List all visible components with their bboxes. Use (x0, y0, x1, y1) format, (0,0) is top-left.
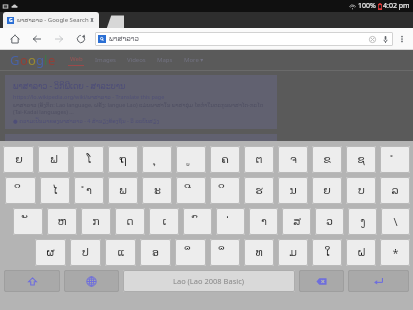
staticText: ໂ (86, 153, 92, 166)
staticText: Web (70, 55, 83, 63)
staticText: ຍ (323, 184, 331, 197)
button[interactable]: ງ (348, 208, 377, 235)
button[interactable]: ລ (380, 177, 410, 204)
button[interactable]: ຟ (38, 146, 69, 173)
button[interactable]: ູ (176, 146, 206, 173)
button[interactable]: ະ (142, 177, 172, 204)
button[interactable]: Maps (157, 56, 173, 64)
button[interactable]: ຮ (244, 177, 274, 204)
staticText: ພາສາລາວ (ອັງກິດ: Lao language, ຝຣັ່ງ: la… (13, 101, 269, 115)
button[interactable]: ດ (115, 208, 145, 235)
button[interactable]: ຫ (47, 208, 77, 235)
button[interactable]: າ (249, 208, 278, 235)
button[interactable]: ຄ (210, 146, 240, 173)
button[interactable]: ສ (282, 208, 311, 235)
staticText: e (48, 51, 56, 69)
staticText: 100% (358, 1, 376, 11)
staticText: \ (393, 214, 398, 229)
button[interactable]: ຝ (346, 239, 376, 266)
button[interactable]: ມ (278, 239, 308, 266)
staticText: Lao (Lao 2008 Basic) (173, 276, 245, 286)
button[interactable]: ຖ (108, 146, 138, 173)
button[interactable]: Lao (Lao 2008 Basic) (123, 270, 295, 292)
button[interactable]: Back (26, 28, 48, 49)
button[interactable]: ັ (13, 208, 43, 235)
button[interactable]: Clear (368, 35, 377, 44)
button[interactable]: ຈ (278, 146, 308, 173)
button[interactable]: \ (381, 208, 410, 235)
button[interactable]: ົ (183, 208, 212, 235)
staticText: ວ (326, 215, 333, 228)
staticText: ຟ (50, 153, 58, 166)
button[interactable]: More ▾ (184, 56, 204, 64)
button[interactable]: ຸ (142, 146, 172, 173)
button[interactable]: Images (95, 56, 116, 64)
staticText: * (392, 245, 399, 260)
button[interactable]: ນ (278, 177, 308, 204)
button[interactable]: Other tab (102, 12, 124, 28)
staticText: ມ (289, 246, 297, 259)
staticText: o (28, 51, 36, 69)
button[interactable]: ີ (176, 177, 206, 204)
button[interactable]: ວ (315, 208, 344, 235)
staticText: ງ (360, 215, 366, 228)
button[interactable]: Reload (70, 28, 92, 49)
button[interactable]: ໂ (73, 146, 104, 173)
button[interactable]: Close tab (89, 16, 95, 24)
button[interactable]: Forward (48, 28, 70, 49)
button[interactable]: Change language (64, 270, 119, 292)
button[interactable]: ເ (149, 208, 179, 235)
button[interactable]: ຳ (74, 177, 104, 204)
staticText: ຫ (57, 215, 67, 228)
button[interactable]: More options (395, 32, 409, 46)
button[interactable]: ່ (216, 208, 245, 235)
button[interactable]: Web (68, 55, 84, 66)
button[interactable]: ຍ (3, 146, 34, 173)
button[interactable]: ທ (244, 239, 274, 266)
staticText: ຝ (357, 246, 366, 259)
button[interactable]: ຂ (312, 146, 342, 173)
button[interactable]: ພາສາລາວ - ວິກິພີເດຍ - ສາລະບານ (5, 75, 277, 129)
button[interactable]: Home (4, 28, 26, 49)
staticText: ຍ (15, 153, 23, 166)
button[interactable]: ພ (108, 177, 138, 204)
staticText: ຜ (46, 246, 55, 259)
button[interactable]: ບ (346, 177, 376, 204)
button[interactable]: Videos (127, 56, 146, 64)
staticText: ຳ (86, 184, 92, 197)
staticText: ກ (92, 215, 100, 228)
staticText: ທ (255, 246, 263, 259)
button[interactable]: ຊ (346, 146, 376, 173)
button[interactable]: Backspace (299, 270, 344, 292)
button[interactable]: Voice search (381, 35, 390, 44)
button[interactable]: ິ (5, 177, 36, 204)
button[interactable]: ໍ (380, 146, 410, 173)
button[interactable]: ິ (210, 177, 240, 204)
staticText: ະ (154, 184, 161, 197)
button[interactable]: ແ (105, 239, 136, 266)
staticText: o (20, 51, 28, 69)
button[interactable]: ໃ (312, 239, 342, 266)
staticText: g (36, 51, 44, 69)
button[interactable]: ຍ (312, 177, 342, 204)
button[interactable]: G (3, 12, 99, 28)
button[interactable]: ໄ (40, 177, 70, 204)
staticText: ອ (152, 246, 159, 259)
button[interactable]: ຶ (175, 239, 206, 266)
button[interactable]: ກ (81, 208, 111, 235)
staticText: ຊ (357, 153, 365, 166)
staticText: ສ (293, 215, 301, 228)
button[interactable]: ຶ (210, 239, 240, 266)
button[interactable]: ພາສາລາວ (95, 32, 393, 46)
button[interactable]: ຕ (244, 146, 274, 173)
button[interactable]: Shift (4, 270, 60, 292)
button[interactable]: * (380, 239, 410, 266)
button[interactable]: ປ (70, 239, 101, 266)
button[interactable]: Enter (348, 270, 409, 292)
staticText: ບ (358, 184, 365, 197)
button[interactable]: ຜ (35, 239, 66, 266)
staticText: ນ (289, 184, 297, 197)
button[interactable]: ອ (140, 239, 171, 266)
staticText: ພາສາລາວ (109, 35, 140, 43)
staticText: ໄ (52, 184, 58, 197)
